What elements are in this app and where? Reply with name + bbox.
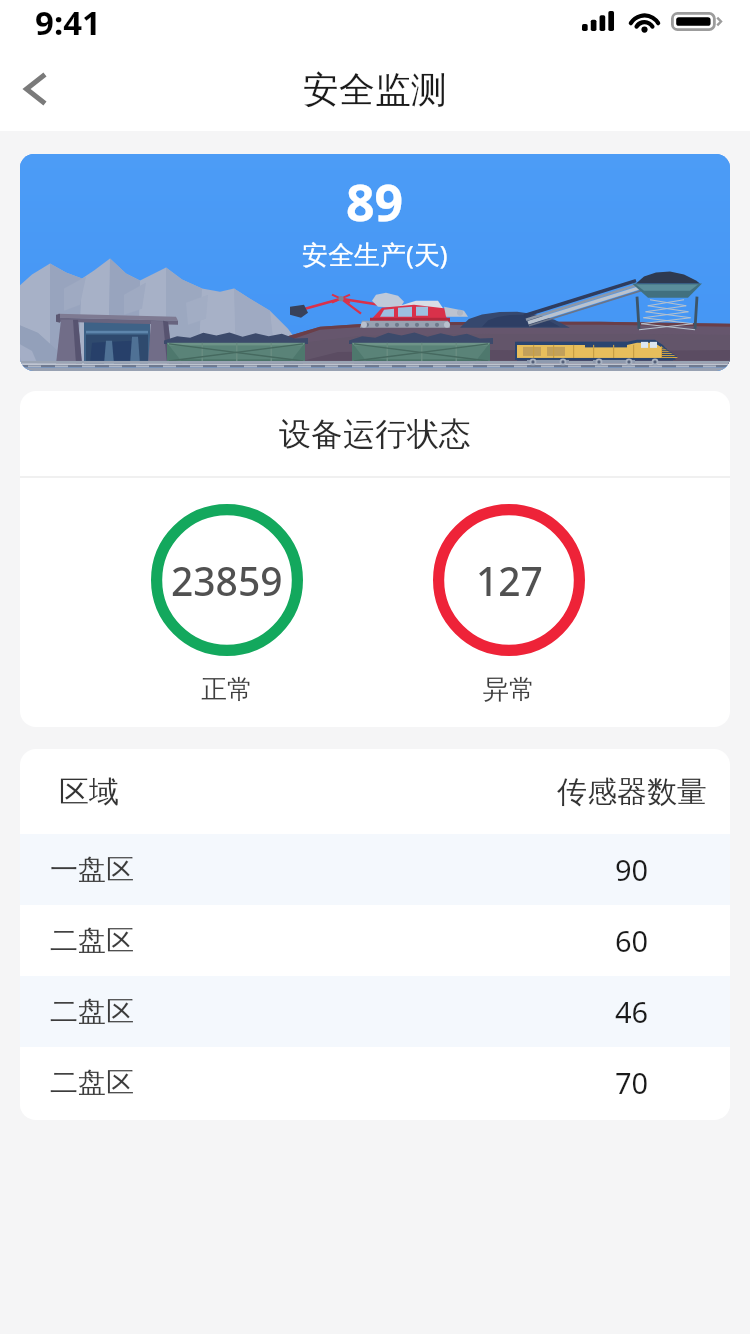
- staticText: 安全监测: [303, 67, 447, 112]
- staticText: 区域: [59, 773, 119, 811]
- staticText: 二盘区: [50, 923, 134, 958]
- staticText: 异常: [483, 673, 535, 706]
- button[interactable]: 89: [20, 154, 730, 371]
- button[interactable]: Back: [8, 63, 60, 115]
- staticText: 127: [476, 554, 543, 607]
- button[interactable]: 二盘区: [20, 1047, 730, 1118]
- staticText: 23859: [171, 554, 283, 607]
- staticText: 二盘区: [50, 1065, 134, 1100]
- staticText: 二盘区: [50, 994, 134, 1029]
- staticText: 安全生产(天): [302, 236, 448, 272]
- staticText: 9:41: [35, 0, 101, 45]
- staticText: 89: [346, 168, 404, 236]
- staticText: 46: [615, 992, 649, 1031]
- staticText: 设备运行状态: [279, 414, 471, 454]
- button[interactable]: 一盘区: [20, 834, 730, 905]
- staticText: 传感器数量: [557, 773, 707, 811]
- staticText: 90: [615, 850, 649, 889]
- staticText: 一盘区: [50, 852, 134, 887]
- staticText: 70: [615, 1063, 649, 1102]
- staticText: 60: [615, 921, 649, 960]
- button[interactable]: 二盘区: [20, 976, 730, 1047]
- staticText: 正常: [201, 673, 253, 706]
- button[interactable]: 二盘区: [20, 905, 730, 976]
